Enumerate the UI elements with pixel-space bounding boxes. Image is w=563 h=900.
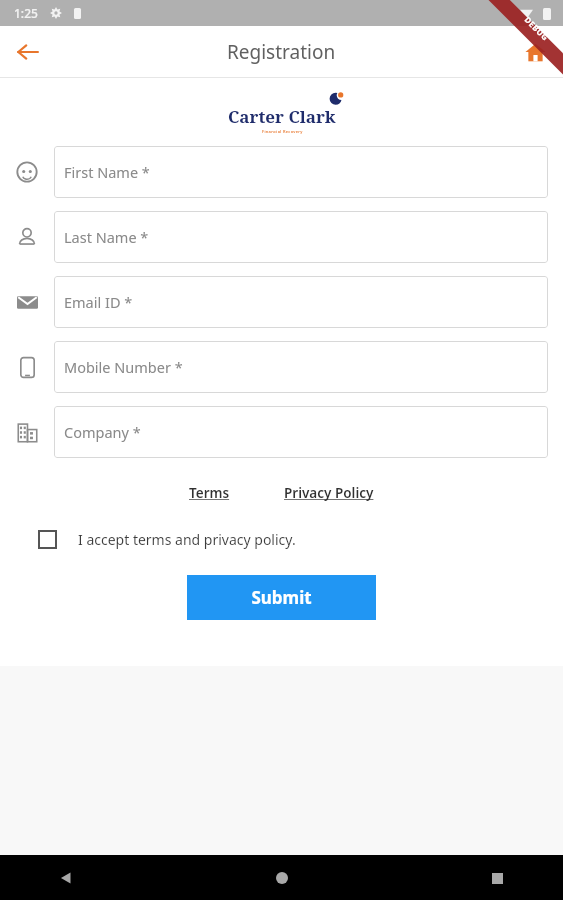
staticText: Last Name * xyxy=(64,227,149,247)
staticText: Submit xyxy=(251,586,312,609)
button[interactable]: Mobile Number * xyxy=(54,341,548,393)
staticText: Privacy Policy xyxy=(284,484,374,502)
button[interactable]: Submit xyxy=(187,575,376,620)
staticText: Company * xyxy=(64,422,141,442)
button[interactable]: Home xyxy=(515,32,555,72)
staticText: DEBUG xyxy=(522,14,551,43)
staticText: Mobile Number * xyxy=(64,357,183,377)
button[interactable]: Privacy Policy xyxy=(278,481,380,505)
staticText: I accept terms and privacy policy. xyxy=(78,530,296,549)
staticText: Email ID * xyxy=(64,292,133,312)
button[interactable]: Back xyxy=(46,858,86,898)
button[interactable]: Last Name * xyxy=(54,211,548,263)
button[interactable]: Back xyxy=(8,32,48,72)
staticText: First Name * xyxy=(64,162,150,182)
staticText: Terms xyxy=(189,484,230,502)
staticText: Registration xyxy=(227,39,336,65)
button[interactable]: Company * xyxy=(54,406,548,458)
button[interactable]: Recent apps xyxy=(477,858,517,898)
button[interactable]: I accept terms and privacy policy. xyxy=(0,530,563,549)
button[interactable]: Terms xyxy=(183,481,236,505)
staticText: 1:25 xyxy=(14,5,38,21)
button[interactable]: First Name * xyxy=(54,146,548,198)
button[interactable]: Email ID * xyxy=(54,276,548,328)
button[interactable]: Home xyxy=(262,858,302,898)
staticText: Financial Recovery xyxy=(262,129,303,134)
staticText: Carter Clark xyxy=(228,105,336,128)
